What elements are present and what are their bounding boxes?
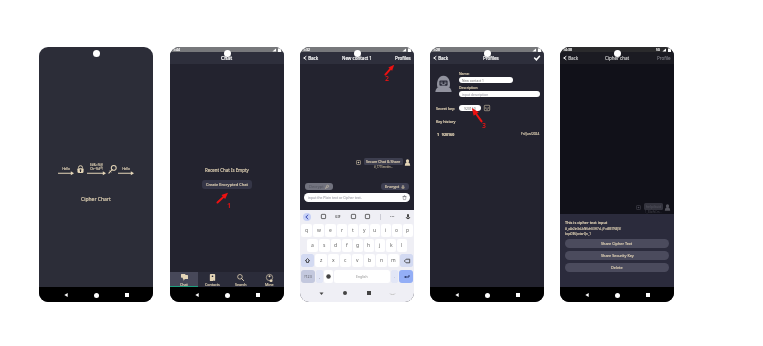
button[interactable]: Back — [433, 55, 449, 61]
staticText: Description: — [459, 85, 479, 90]
button[interactable]: Recents — [254, 291, 262, 299]
button[interactable]: Profile — [657, 55, 671, 61]
button[interactable]: Delete — [565, 263, 669, 272]
button[interactable]: q — [301, 224, 312, 237]
button[interactable]: Back — [193, 291, 201, 299]
button[interactable]: j — [375, 239, 385, 252]
button[interactable]: x — [328, 254, 339, 267]
button[interactable]: d — [331, 239, 341, 252]
button[interactable]: v — [352, 254, 363, 267]
button[interactable]: Back — [583, 291, 591, 299]
button[interactable]: Contacts — [198, 272, 226, 287]
button[interactable]: z — [315, 254, 327, 267]
staticText: Cipher chat — [605, 55, 630, 61]
button[interactable]: Chat — [170, 272, 198, 287]
staticText: Hello — [62, 167, 70, 171]
button[interactable]: p — [403, 224, 413, 237]
button[interactable]: Home — [613, 291, 621, 299]
staticText: 14:38 — [563, 47, 572, 52]
button[interactable]: e — [325, 224, 336, 237]
staticText: w — [317, 227, 321, 234]
button[interactable]: Create Encrypted Chat — [202, 180, 252, 189]
button[interactable]: Back — [303, 55, 319, 61]
button[interactable]: input the Plain text or Cipher text. — [304, 193, 410, 202]
button[interactable]: input description — [459, 91, 540, 97]
button[interactable]: h — [364, 239, 374, 252]
button[interactable]: i — [381, 224, 391, 237]
staticText: New contact 1 — [462, 78, 484, 82]
button[interactable]: Recents — [644, 291, 652, 299]
button[interactable]: ?123 — [301, 270, 315, 283]
button[interactable]: Home — [223, 291, 231, 299]
button[interactable]: b — [364, 254, 375, 267]
button[interactable]: Back — [563, 55, 579, 61]
button[interactable]: Decrypt — [305, 183, 333, 190]
staticText: Secret key: — [436, 106, 455, 111]
staticText: . — [394, 274, 395, 279]
button[interactable] — [301, 254, 314, 267]
button[interactable]: Search — [226, 272, 255, 287]
button[interactable]: c — [340, 254, 351, 267]
button[interactable]: Recents — [514, 291, 522, 299]
staticText: English — [356, 274, 368, 279]
button[interactable]: n — [376, 254, 387, 267]
button[interactable]: l — [397, 239, 407, 252]
button[interactable]: r — [337, 224, 347, 237]
staticText: f — [346, 242, 348, 249]
button[interactable]: f — [342, 239, 352, 252]
button[interactable]: w — [313, 224, 324, 237]
button[interactable]: y — [359, 224, 369, 237]
button[interactable] — [400, 254, 413, 267]
button[interactable]: k — [386, 239, 396, 252]
staticText: Fri/Jun/2024 — [521, 132, 540, 136]
button[interactable]: Share Security Key — [565, 251, 669, 260]
staticText: Encrypt — [385, 184, 401, 189]
staticText: o — [395, 227, 399, 234]
staticText: Name: — [459, 71, 470, 76]
staticText: j — [379, 242, 381, 249]
staticText: b — [368, 257, 372, 264]
staticText: Cipher Chart — [81, 196, 111, 203]
staticText: r — [341, 227, 344, 234]
staticText: 5G — [656, 48, 660, 52]
button[interactable]: g — [353, 239, 363, 252]
button[interactable]: Back — [453, 291, 461, 299]
staticText: Share Security Key — [601, 253, 634, 258]
staticText: Back — [307, 55, 319, 61]
button[interactable]: s — [319, 239, 330, 252]
staticText: n — [380, 257, 384, 264]
button[interactable]: Mine — [255, 272, 284, 287]
button[interactable]: English — [334, 270, 390, 283]
button[interactable]: a — [307, 239, 318, 252]
button[interactable]: u — [370, 224, 380, 237]
staticText: k — [390, 242, 393, 249]
button[interactable]: 920160 — [459, 105, 481, 111]
button[interactable]: m — [388, 254, 399, 267]
button[interactable]: Regenerate key — [484, 105, 490, 111]
staticText: input the Plain text or Cipher text. — [308, 195, 362, 200]
staticText: i — [385, 227, 387, 234]
staticText: h — [367, 242, 371, 249]
staticText: q — [305, 227, 309, 234]
button[interactable]: Home — [92, 291, 100, 299]
button[interactable]: t — [348, 224, 358, 237]
button[interactable]: , — [316, 270, 323, 283]
staticText: e — [329, 227, 332, 234]
button[interactable]: o — [392, 224, 402, 237]
staticText: Profile — [657, 55, 671, 61]
button[interactable] — [324, 270, 333, 283]
button[interactable] — [399, 270, 413, 283]
button[interactable]: Encrypt — [381, 183, 409, 190]
button[interactable]: Home — [483, 291, 491, 299]
staticText: #_aAr2inSsLbN6vhS3H7cL,iF=d8E7NEJS/ bqoD… — [565, 227, 622, 236]
staticText: New contact 1 — [342, 55, 372, 61]
staticText: 1:32 — [303, 47, 310, 52]
button[interactable]: Share Cipher Text — [565, 239, 669, 248]
button[interactable]: Profiles — [395, 55, 411, 61]
button[interactable]: Recents — [123, 291, 131, 299]
button[interactable]: New contact 1 — [459, 77, 513, 83]
button[interactable]: Back — [62, 291, 70, 299]
button[interactable]: Confirm — [533, 54, 541, 62]
staticText: Delete — [611, 265, 623, 270]
